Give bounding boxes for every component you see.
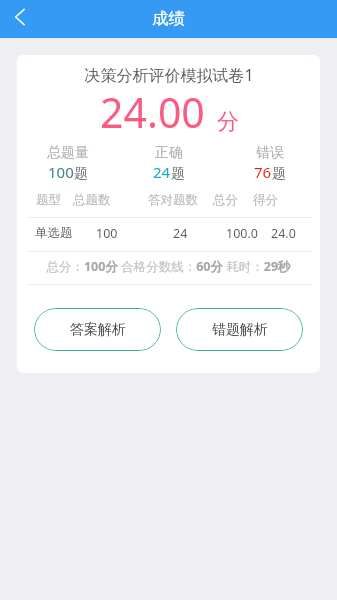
staticText: 24	[173, 225, 188, 242]
staticText: 错误	[256, 144, 284, 162]
button[interactable]: Back	[0, 0, 40, 38]
button[interactable]: 答案解析	[34, 308, 161, 351]
staticText: 正确	[155, 144, 183, 162]
staticText: 答案解析	[70, 321, 126, 339]
staticText: 100.0	[226, 225, 258, 242]
staticText: 24.00	[100, 84, 205, 140]
staticText: 题	[74, 165, 88, 183]
staticText: 答对题数	[148, 192, 198, 208]
button[interactable]: 错题解析	[176, 308, 303, 351]
staticText: 24.0	[271, 225, 296, 242]
staticText: 得分	[253, 192, 278, 208]
staticText: 总分：100分 合格分数线：60分 耗时：29秒	[17, 258, 320, 275]
staticText: 成绩	[152, 8, 185, 29]
staticText: 题	[272, 165, 286, 183]
staticText: 总分	[213, 192, 238, 208]
staticText: 分	[217, 108, 239, 136]
staticText: 单选题	[35, 225, 73, 241]
staticText: 决策分析评价模拟试卷1	[84, 64, 254, 86]
staticText: 题	[171, 165, 185, 183]
staticText: 100	[48, 162, 74, 182]
staticText: 76	[254, 162, 272, 182]
staticText: 总题数	[73, 192, 111, 208]
staticText: 题型	[36, 192, 61, 208]
staticText: 错题解析	[212, 321, 268, 339]
staticText: 100	[96, 225, 118, 242]
staticText: 24	[153, 162, 171, 182]
staticText: 总题量	[47, 144, 89, 162]
